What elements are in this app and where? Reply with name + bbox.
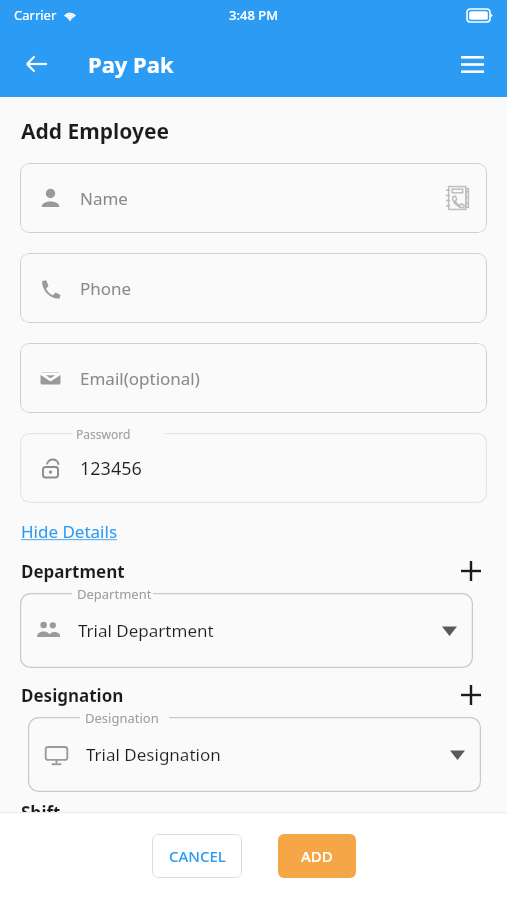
staticText: Designation [85, 709, 159, 727]
button[interactable]: Trial Department [20, 593, 473, 668]
staticText: Designation [21, 684, 124, 707]
staticText: Phone [80, 277, 132, 300]
staticText: Trial Designation [86, 743, 221, 766]
button[interactable]: Add Designation [455, 679, 487, 711]
staticText: CANCEL [169, 846, 226, 866]
button[interactable]: Phone [20, 253, 487, 323]
button[interactable]: Hide Details [21, 520, 118, 543]
staticText: Add Employee [21, 117, 170, 146]
staticText: Carrier [14, 6, 57, 24]
button[interactable]: CANCEL [152, 834, 242, 878]
button[interactable]: Add Department [455, 555, 487, 587]
staticText: 123456 [80, 456, 142, 481]
staticText: Name [80, 187, 128, 210]
button[interactable]: 123456 [20, 433, 487, 503]
button[interactable]: Name [20, 163, 487, 233]
staticText: Password [76, 426, 131, 442]
staticText: Shift [21, 801, 61, 812]
staticText: Hide Details [21, 520, 118, 543]
staticText: Pay Pak [88, 49, 174, 79]
staticText: ADD [301, 846, 333, 866]
button[interactable]: ADD [278, 834, 356, 878]
staticText: Trial Department [78, 619, 214, 642]
button[interactable]: Pick from contacts [437, 177, 479, 219]
button[interactable]: Email(optional) [20, 343, 487, 413]
button[interactable]: Back [14, 41, 60, 87]
button[interactable]: Menu [449, 41, 495, 87]
staticText: Email(optional) [80, 367, 200, 390]
staticText: Department [77, 585, 152, 603]
staticText: 3:48 PM [229, 6, 279, 24]
staticText: Department [21, 560, 125, 583]
button[interactable]: Trial Designation [28, 717, 481, 792]
